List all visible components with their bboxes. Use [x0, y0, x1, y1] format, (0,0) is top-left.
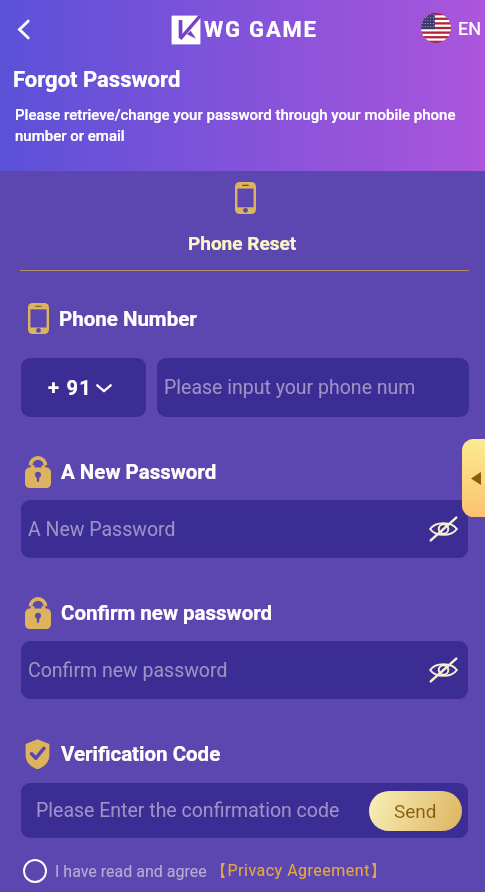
- button[interactable]: + 91: [21, 358, 146, 417]
- button[interactable]: EN: [421, 13, 482, 43]
- staticText: Please retrieve/change your password thr…: [15, 106, 467, 145]
- staticText: A New Password: [61, 460, 217, 484]
- staticText: Verification Code: [61, 742, 221, 766]
- button[interactable]: Expand side panel: [462, 439, 485, 517]
- staticText: 【Privacy Agreement】: [211, 861, 387, 881]
- button[interactable]: Please Enter the confirmation code: [21, 783, 468, 838]
- button[interactable]: I have read and agree: [23, 859, 387, 883]
- staticText: I have read and agree: [55, 862, 207, 881]
- staticText: Phone Reset: [188, 232, 297, 254]
- staticText: Send: [394, 800, 437, 822]
- staticText: A New Password: [28, 518, 176, 541]
- button[interactable]: Show password: [424, 651, 462, 689]
- button[interactable]: Show password: [424, 510, 462, 548]
- staticText: + 91: [48, 376, 93, 399]
- staticText: WG GAME: [204, 17, 318, 43]
- button[interactable]: Please input your phone num: [157, 358, 469, 417]
- button[interactable]: Send: [369, 791, 462, 831]
- button[interactable]: Confirm new password: [21, 641, 468, 699]
- staticText: Please Enter the confirmation code: [36, 799, 340, 822]
- staticText: EN: [458, 18, 482, 39]
- staticText: Confirm new password: [28, 659, 228, 682]
- staticText: Phone Number: [59, 307, 197, 331]
- staticText: Forgot Password: [13, 67, 181, 93]
- button[interactable]: A New Password: [21, 500, 468, 558]
- staticText: Confirm new password: [61, 601, 273, 625]
- staticText: Please input your phone num: [164, 376, 416, 399]
- button[interactable]: Back: [4, 9, 44, 49]
